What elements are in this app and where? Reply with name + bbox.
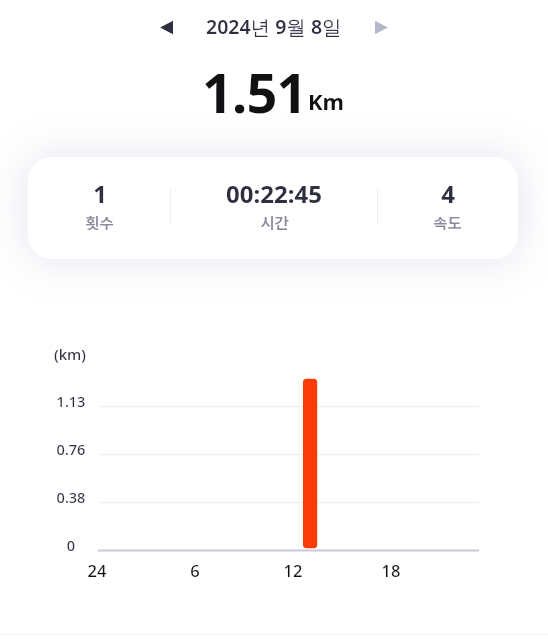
staticText: (km) xyxy=(54,344,86,364)
staticText: 4 xyxy=(441,177,455,210)
button[interactable]: Previous day xyxy=(151,11,183,43)
staticText: 00:22:45 xyxy=(226,177,322,210)
staticText: 1 xyxy=(93,177,107,210)
staticText: 0.38 xyxy=(41,487,101,507)
staticText: 0.76 xyxy=(41,439,101,459)
staticText: 횟수 xyxy=(85,211,114,233)
staticText: 1.13 xyxy=(41,391,101,411)
staticText: 12 xyxy=(273,559,313,581)
staticText: 2024년 9월 8일 xyxy=(206,13,342,40)
staticText: 시간 xyxy=(260,211,289,233)
staticText: 24 xyxy=(77,559,117,581)
staticText: Km xyxy=(308,86,345,116)
staticText: 6 xyxy=(175,559,215,581)
staticText: 18 xyxy=(371,559,411,581)
button[interactable]: Next day xyxy=(365,11,397,43)
staticText: 0 xyxy=(41,535,101,555)
button[interactable]: 1 xyxy=(28,157,518,259)
staticText: 속도 xyxy=(433,211,462,233)
staticText: 1.51 xyxy=(202,55,307,129)
